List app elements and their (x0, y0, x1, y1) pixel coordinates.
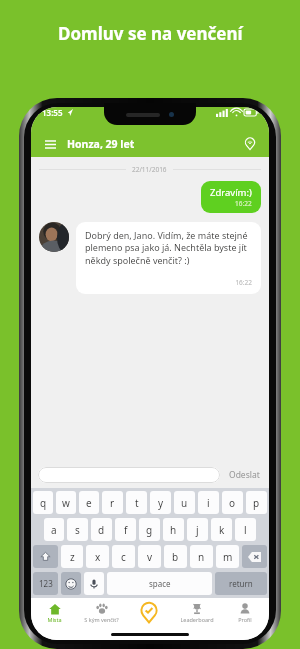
staticText: x (95, 550, 101, 564)
button[interactable]: Key (61, 572, 81, 595)
staticText: e (86, 496, 92, 510)
button[interactable]: b (164, 545, 187, 568)
staticText: Odeslat (229, 469, 260, 481)
button[interactable]: Menu (41, 135, 59, 153)
staticText: s (75, 523, 80, 537)
button[interactable]: j (187, 518, 208, 541)
button[interactable]: l (235, 518, 256, 541)
button[interactable]: a (44, 518, 64, 541)
staticText: S kým venčit? (84, 616, 119, 623)
staticText: space (149, 578, 171, 589)
button[interactable]: o (222, 491, 243, 514)
staticText: k (219, 523, 225, 537)
staticText: l (244, 523, 247, 537)
button[interactable]: y (150, 491, 171, 514)
staticText: Profil (238, 616, 252, 623)
button[interactable]: Profil (221, 598, 269, 628)
staticText: Místa (47, 616, 62, 623)
button[interactable]: Leaderboard (173, 598, 221, 628)
button[interactable]: f (115, 518, 136, 541)
button[interactable]: t (126, 491, 147, 514)
staticText: f (124, 523, 128, 537)
button[interactable] (38, 467, 220, 483)
button[interactable]: S kým venčit? (78, 598, 125, 628)
button[interactable]: g (139, 518, 160, 541)
button[interactable]: n (190, 545, 213, 568)
button[interactable]: Key (33, 572, 58, 595)
staticText: p (253, 496, 260, 510)
staticText: q (40, 496, 47, 510)
staticText: Zdravím:) (210, 186, 252, 199)
staticText: n (198, 550, 205, 564)
button[interactable]: Zdravím:) (201, 181, 261, 213)
staticText: Leaderboard (180, 616, 214, 623)
staticText: 22/11/2016 (132, 165, 167, 174)
staticText: o (229, 496, 236, 510)
button[interactable]: c (112, 545, 135, 568)
staticText: b (172, 550, 179, 564)
button[interactable]: p (246, 491, 267, 514)
staticText: z (70, 550, 75, 564)
button[interactable]: h (163, 518, 184, 541)
button[interactable]: Location (241, 135, 259, 153)
staticText: 123 (39, 578, 53, 589)
staticText: Dobrý den, Jano. Vidím, že máte stejné p… (85, 229, 252, 267)
button[interactable]: u (174, 491, 195, 514)
button[interactable]: s (67, 518, 88, 541)
button[interactable]: k (211, 518, 232, 541)
staticText: 16:22 (85, 278, 252, 287)
button[interactable]: r (102, 491, 123, 514)
staticText: i (207, 496, 210, 510)
button[interactable]: Venčení (125, 598, 173, 628)
staticText: 16:22 (235, 199, 252, 208)
staticText: 13:55 (42, 107, 63, 118)
button[interactable]: x (86, 545, 109, 568)
button[interactable]: i (198, 491, 219, 514)
staticText: Honza, 29 let (67, 137, 135, 151)
button[interactable]: Key (107, 572, 212, 595)
staticText: u (181, 496, 188, 510)
button[interactable]: Místa (31, 598, 78, 628)
button[interactable]: q (33, 491, 53, 514)
button[interactable]: Dobrý den, Jano. Vidím, že máte stejné p… (76, 222, 261, 294)
button[interactable]: Key (84, 572, 104, 595)
staticText: c (121, 550, 126, 564)
staticText: j (196, 523, 199, 537)
staticText: a (51, 523, 57, 537)
button[interactable]: m (216, 545, 239, 568)
staticText: w (62, 496, 70, 510)
button[interactable]: d (91, 518, 112, 541)
button[interactable]: Key (242, 545, 267, 568)
staticText: g (146, 523, 153, 537)
staticText: d (98, 523, 105, 537)
staticText: y (158, 496, 164, 510)
staticText: return (229, 578, 253, 589)
staticText: h (170, 523, 177, 537)
staticText: t (135, 496, 139, 510)
button[interactable]: w (56, 491, 76, 514)
staticText: r (110, 496, 115, 510)
button[interactable]: z (61, 545, 83, 568)
staticText: Domluv se na venčení (58, 22, 243, 45)
button[interactable]: e (79, 491, 99, 514)
staticText: m (223, 550, 233, 564)
button[interactable]: Key (33, 545, 58, 568)
button[interactable]: Key (215, 572, 267, 595)
button[interactable]: v (138, 545, 161, 568)
button[interactable]: Avatar (39, 222, 69, 252)
button[interactable]: Odeslat (227, 469, 262, 481)
staticText: v (147, 550, 153, 564)
